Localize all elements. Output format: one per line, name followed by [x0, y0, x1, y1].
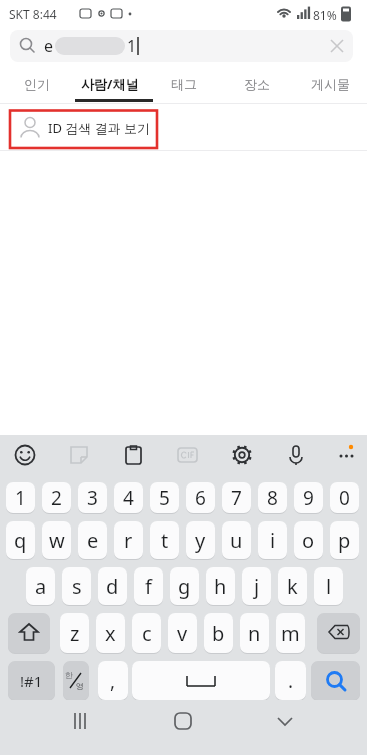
button[interactable]: 인기 — [0, 64, 73, 103]
staticText: 장소 — [244, 76, 270, 92]
button[interactable] — [262, 705, 307, 750]
staticText: f — [145, 573, 152, 600]
staticText: a — [35, 573, 47, 600]
button[interactable]: 2 — [42, 482, 71, 513]
button[interactable]: 한 — [63, 661, 89, 700]
staticText: 사람/채널 — [81, 75, 139, 93]
button[interactable]: c — [132, 613, 161, 653]
button[interactable]: o — [294, 521, 323, 559]
button[interactable]: , — [98, 661, 128, 700]
button[interactable]: n — [240, 613, 269, 653]
button[interactable]: 9 — [294, 482, 323, 513]
button[interactable]: 사람/채널 — [73, 64, 146, 103]
button[interactable]: e — [78, 521, 107, 559]
button[interactable]: h — [206, 567, 235, 605]
staticText: 0 — [339, 485, 350, 511]
button[interactable]: v — [168, 613, 197, 653]
button[interactable]: r — [114, 521, 143, 559]
button[interactable]: u — [222, 521, 251, 559]
button[interactable]: p — [330, 521, 359, 559]
button[interactable]: w — [42, 521, 71, 559]
staticText: 7 — [231, 485, 242, 511]
button[interactable]: 게시물 — [294, 64, 367, 103]
staticText: ID 검색 결과 보기 — [48, 119, 151, 137]
staticText: t — [161, 527, 169, 554]
staticText: 1 — [127, 35, 137, 57]
button[interactable]: i — [258, 521, 287, 559]
staticText: x — [105, 620, 116, 647]
staticText: , — [110, 668, 116, 694]
staticText: 3 — [87, 485, 98, 511]
button[interactable] — [160, 705, 205, 750]
staticText: 게시물 — [311, 76, 350, 92]
staticText: 1 — [15, 485, 26, 511]
staticText: l — [326, 573, 332, 600]
button[interactable]: 7 — [222, 482, 251, 513]
button[interactable]: 장소 — [220, 64, 293, 103]
button[interactable]: 0 — [330, 482, 359, 513]
staticText: m — [281, 620, 300, 647]
staticText: q — [14, 527, 27, 554]
button[interactable] — [10, 30, 353, 62]
button[interactable]: 8 — [258, 482, 287, 513]
button[interactable]: m — [276, 613, 305, 653]
button[interactable]: b — [204, 613, 233, 653]
staticText: . — [288, 668, 294, 694]
staticText: 5 — [159, 485, 170, 511]
button[interactable]: t — [150, 521, 179, 559]
button[interactable]: 1 — [6, 482, 35, 513]
staticText: o — [302, 527, 315, 554]
staticText: !#1 — [20, 671, 43, 691]
button[interactable]: y — [186, 521, 215, 559]
button[interactable]: x — [96, 613, 125, 653]
staticText: w — [49, 527, 65, 554]
staticText: 4 — [123, 485, 134, 511]
staticText: 6 — [195, 485, 206, 511]
staticText: e — [44, 35, 54, 57]
button[interactable] — [317, 613, 360, 653]
button[interactable]: q — [6, 521, 35, 559]
button[interactable]: !#1 — [8, 661, 55, 700]
button[interactable]: 5 — [150, 482, 179, 513]
staticText: v — [177, 620, 188, 647]
staticText: h — [214, 573, 227, 600]
button[interactable]: 6 — [186, 482, 215, 513]
staticText: 9 — [303, 485, 314, 511]
button[interactable]: d — [98, 567, 127, 605]
button[interactable]: f — [134, 567, 163, 605]
button[interactable] — [8, 613, 50, 653]
button[interactable]: ID 검색 결과 보기 — [0, 104, 367, 150]
button[interactable]: l — [314, 567, 343, 605]
staticText: s — [72, 573, 82, 600]
staticText: e — [87, 527, 99, 554]
button[interactable] — [60, 705, 105, 750]
button[interactable]: a — [26, 567, 55, 605]
button[interactable] — [132, 661, 270, 700]
staticText: 영 — [76, 681, 84, 691]
staticText: n — [248, 620, 261, 647]
staticText: 한 — [65, 670, 73, 680]
staticText: y — [195, 527, 206, 554]
staticText: 8 — [267, 485, 278, 511]
button[interactable]: 3 — [78, 482, 107, 513]
staticText: 태그 — [171, 76, 197, 92]
button[interactable]: k — [278, 567, 307, 605]
button[interactable]: . — [275, 661, 306, 700]
button[interactable]: j — [242, 567, 271, 605]
button[interactable]: 4 — [114, 482, 143, 513]
staticText: g — [178, 573, 191, 600]
staticText: r — [124, 527, 133, 554]
button[interactable]: 태그 — [147, 64, 220, 103]
staticText: SKT 8:44 — [9, 6, 57, 22]
staticText: j — [254, 573, 260, 600]
staticText: d — [106, 573, 119, 600]
button[interactable]: s — [62, 567, 91, 605]
staticText: k — [287, 573, 298, 600]
staticText: i — [270, 527, 276, 554]
staticText: p — [338, 527, 351, 554]
button[interactable] — [311, 661, 360, 700]
button[interactable]: z — [60, 613, 89, 653]
staticText: 81% — [313, 7, 337, 23]
staticText: 인기 — [24, 76, 50, 92]
button[interactable]: g — [170, 567, 199, 605]
